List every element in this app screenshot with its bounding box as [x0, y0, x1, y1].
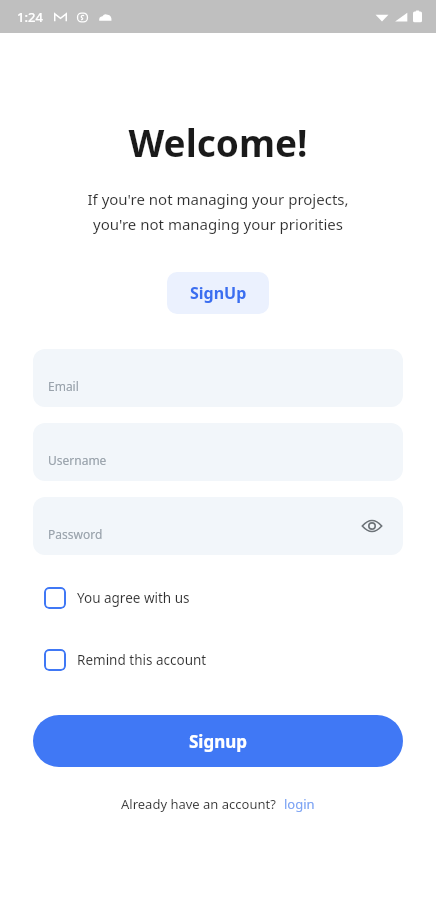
- button[interactable]: Show password: [359, 513, 385, 539]
- button[interactable]: Username: [33, 423, 403, 481]
- staticText: Remind this account: [77, 651, 207, 669]
- button[interactable]: Email: [33, 349, 403, 407]
- staticText: Email: [48, 378, 79, 394]
- button[interactable]: login: [284, 795, 315, 813]
- staticText: SignUp: [190, 282, 247, 304]
- staticText: Welcome!: [0, 117, 436, 167]
- button[interactable]: You agree with us: [33, 587, 403, 609]
- staticText: 1:24: [17, 8, 43, 26]
- staticText: Already have an account?: [121, 795, 276, 813]
- button[interactable]: Password: [33, 497, 403, 555]
- button[interactable]: Remind this account: [33, 649, 403, 671]
- staticText: You agree with us: [77, 589, 190, 607]
- button[interactable]: SignUp: [167, 272, 269, 314]
- button[interactable]: Signup: [33, 715, 403, 767]
- staticText: Signup: [189, 730, 248, 753]
- staticText: Password: [48, 526, 103, 542]
- staticText: login: [284, 795, 315, 813]
- staticText: If you're not managing your projects,: [0, 189, 436, 209]
- staticText: Username: [48, 452, 107, 468]
- staticText: you're not managing your priorities: [0, 214, 436, 234]
